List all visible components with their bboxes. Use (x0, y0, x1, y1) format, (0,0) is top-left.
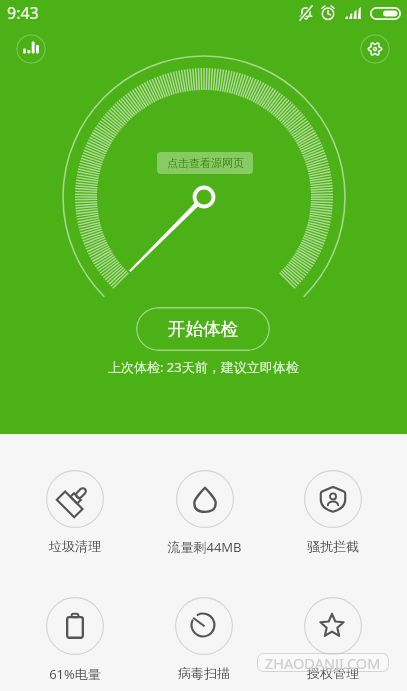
staticText: ZHAODANJI.COM (265, 653, 381, 672)
staticText: 骚扰拦截 (307, 538, 359, 554)
staticText: 开始体检 (168, 318, 238, 340)
staticText: 授权管理 (307, 665, 359, 681)
button[interactable]: 骚扰拦截 (283, 470, 383, 562)
staticText: 垃圾清理 (49, 538, 101, 554)
button[interactable]: 61%电量 (25, 597, 125, 689)
button[interactable]: Usage statistics (16, 34, 46, 64)
button[interactable]: Settings (360, 34, 390, 64)
button[interactable]: 病毒扫描 (154, 597, 254, 689)
button[interactable]: 授权管理 (283, 597, 383, 689)
staticText: 病毒扫描 (178, 665, 230, 681)
staticText: 61%电量 (49, 665, 101, 683)
button[interactable]: 开始体检 (136, 307, 270, 351)
staticText: 点击查看源网页 (167, 156, 244, 170)
button[interactable]: 流量剩44MB (154, 470, 254, 562)
staticText: 流量剩44MB (167, 538, 242, 556)
staticText: 上次体检: 23天前，建议立即体检 (108, 358, 299, 376)
button[interactable]: 垃圾清理 (25, 470, 125, 562)
staticText: 9:43 (7, 2, 39, 24)
